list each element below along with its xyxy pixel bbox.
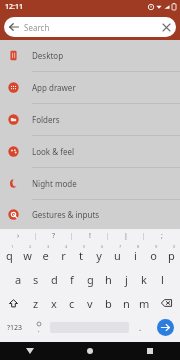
button[interactable]: q [0, 243, 18, 267]
staticText: . [139, 322, 142, 333]
staticText: q [6, 248, 13, 263]
staticText: › [17, 231, 20, 241]
button[interactable]: m [135, 291, 153, 315]
staticText: w [23, 248, 32, 263]
button[interactable]: z [27, 291, 45, 315]
button[interactable]: App drawer [0, 72, 180, 103]
staticText: | [124, 231, 128, 241]
button[interactable]: u [108, 243, 126, 267]
staticText: Search [24, 22, 156, 33]
button[interactable]: d [45, 267, 63, 291]
staticText: n [123, 296, 130, 311]
staticText: x [51, 296, 57, 311]
button[interactable]: | [108, 229, 144, 243]
staticText: y [96, 248, 102, 263]
button[interactable]: Back [4, 17, 176, 37]
staticText: 5 [83, 244, 86, 249]
staticText: e [42, 248, 49, 263]
button[interactable]: Clear search [156, 17, 176, 37]
button[interactable]: v [81, 291, 99, 315]
button[interactable]: Backspace [153, 291, 180, 315]
button[interactable]: Period [131, 315, 150, 340]
button[interactable]: r [54, 243, 72, 267]
button[interactable]: o [144, 243, 162, 267]
staticText: r [61, 248, 66, 263]
staticText: z [33, 296, 39, 311]
button[interactable]: j [117, 267, 135, 291]
button[interactable]: Home [60, 342, 120, 360]
button[interactable]: Shift [0, 291, 27, 315]
button[interactable]: f [63, 267, 81, 291]
staticText: Gestures & inputs [32, 209, 100, 220]
button[interactable]: y [90, 243, 108, 267]
button[interactable]: ! [72, 229, 108, 243]
button[interactable]: Enter [157, 319, 174, 336]
staticText: i [134, 248, 137, 263]
staticText: g [87, 272, 94, 287]
staticText: j [125, 272, 128, 287]
staticText: c [69, 296, 75, 311]
staticText: 3 [47, 244, 50, 249]
button[interactable]: g [81, 267, 99, 291]
staticText: p [168, 248, 175, 263]
button[interactable]: i [126, 243, 144, 267]
button[interactable]: Back [0, 342, 60, 360]
button[interactable]: Look & feel [0, 136, 180, 167]
staticText: ! [89, 231, 91, 241]
staticText: 12:11 [5, 2, 23, 12]
button[interactable]: k [135, 267, 153, 291]
staticText: 0 [173, 244, 176, 249]
staticText: f [70, 272, 74, 287]
staticText: 2 [29, 244, 32, 249]
staticText: b [105, 296, 112, 311]
staticText: u [114, 248, 121, 263]
staticText: 7 [119, 244, 122, 249]
button[interactable]: Desktop [0, 40, 180, 71]
staticText: ? [52, 231, 56, 241]
button[interactable]: s [27, 267, 45, 291]
staticText: 4 [65, 244, 68, 249]
button[interactable]: w [18, 243, 36, 267]
staticText: k [141, 272, 147, 287]
staticText: App drawer [32, 82, 76, 93]
button[interactable]: e [36, 243, 54, 267]
staticText: s [33, 272, 39, 287]
staticText: 8 [137, 244, 140, 249]
button[interactable]: Comma [29, 315, 48, 340]
staticText: 1 [11, 244, 14, 249]
staticText: o [150, 248, 157, 263]
staticText: h [105, 272, 112, 287]
staticText: Folders [32, 114, 60, 125]
staticText: d [51, 272, 58, 287]
staticText: ; [161, 231, 163, 241]
button[interactable]: n [117, 291, 135, 315]
button[interactable]: › [0, 229, 36, 243]
staticText: a [15, 272, 22, 287]
button[interactable]: h [99, 267, 117, 291]
button[interactable]: Gestures & inputs [0, 200, 180, 229]
staticText: , [38, 326, 40, 334]
button[interactable]: t [72, 243, 90, 267]
button[interactable]: p [162, 243, 180, 267]
button[interactable]: c [63, 291, 81, 315]
staticText: Look & feel [32, 146, 74, 157]
button[interactable]: Recent apps [120, 342, 180, 360]
staticText: 6 [101, 244, 104, 249]
staticText: Desktop [32, 50, 64, 61]
staticText: l [161, 272, 164, 287]
staticText: 9 [155, 244, 158, 249]
button[interactable]: Back [4, 17, 24, 37]
button[interactable]: ; [144, 229, 180, 243]
button[interactable]: a [9, 267, 27, 291]
button[interactable]: l [153, 267, 171, 291]
button[interactable]: Folders [0, 104, 180, 135]
button[interactable]: ?123 [0, 315, 29, 340]
button[interactable]: Night mode [0, 168, 180, 199]
button[interactable]: x [45, 291, 63, 315]
button[interactable]: ? [36, 229, 72, 243]
staticText: t [79, 248, 83, 263]
staticText: m [139, 296, 150, 311]
staticText: ?123 [7, 323, 23, 333]
button[interactable]: b [99, 291, 117, 315]
